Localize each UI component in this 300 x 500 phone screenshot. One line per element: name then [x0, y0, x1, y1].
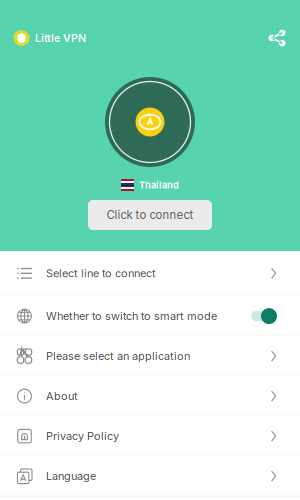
button[interactable]: Thailand [121, 179, 179, 191]
button[interactable]: Language [0, 456, 300, 496]
staticText: Select line to connect [46, 267, 156, 280]
button[interactable]: Connect [105, 77, 195, 167]
button[interactable]: Share [268, 30, 286, 46]
button[interactable]: About [0, 376, 300, 416]
staticText: Whether to switch to smart mode [46, 309, 217, 323]
button[interactable]: Privacy Policy [0, 416, 300, 456]
staticText: Little VPN [35, 31, 86, 44]
button[interactable]: Select line to connect [0, 251, 300, 296]
staticText: Language [46, 469, 96, 483]
button[interactable]: Please select an application [0, 336, 300, 376]
button[interactable]: Whether to switch to smart mode [0, 296, 300, 336]
staticText: Privacy Policy [46, 429, 119, 443]
staticText: Thailand [139, 179, 179, 191]
staticText: Click to connect [106, 208, 193, 222]
button[interactable]: Click to connect [88, 200, 212, 230]
staticText: About [46, 389, 78, 403]
staticText: Please select an application [46, 349, 190, 363]
